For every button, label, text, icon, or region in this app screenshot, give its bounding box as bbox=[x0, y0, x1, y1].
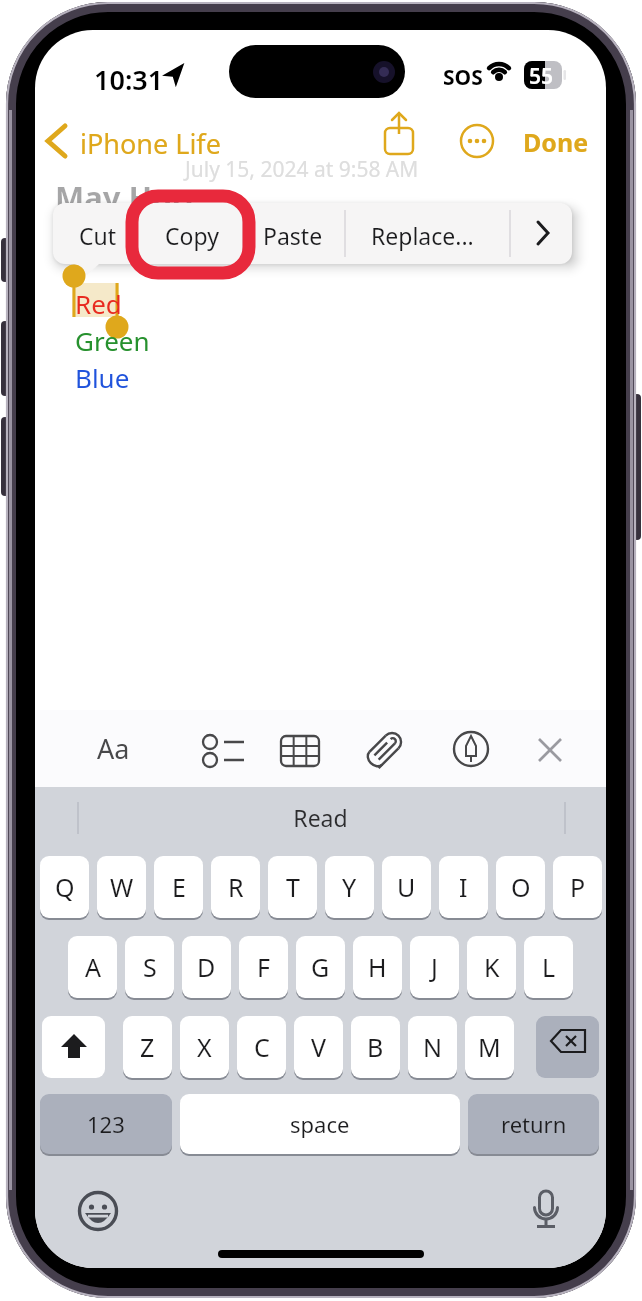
staticText: I bbox=[459, 870, 468, 904]
button[interactable]: R bbox=[211, 856, 260, 918]
button[interactable]: Z bbox=[123, 1016, 172, 1078]
button[interactable]: B bbox=[351, 1016, 400, 1078]
staticText: Red bbox=[75, 286, 122, 321]
button[interactable]: T bbox=[268, 856, 317, 918]
button[interactable]: S bbox=[125, 936, 174, 998]
button[interactable] bbox=[523, 1185, 569, 1233]
staticText: space bbox=[290, 1109, 350, 1139]
button[interactable]: return bbox=[468, 1094, 599, 1154]
staticText: 55 bbox=[529, 62, 554, 91]
button[interactable] bbox=[357, 726, 413, 772]
button[interactable]: L bbox=[524, 936, 573, 998]
staticText: A bbox=[85, 950, 101, 984]
staticText: Y bbox=[342, 870, 357, 904]
staticText: Aa bbox=[97, 730, 130, 767]
button[interactable] bbox=[43, 122, 213, 162]
button[interactable]: X bbox=[180, 1016, 229, 1078]
staticText: H bbox=[368, 950, 387, 984]
staticText: Blue bbox=[75, 360, 130, 395]
button[interactable]: Paste bbox=[257, 218, 327, 250]
staticText: Read bbox=[293, 802, 348, 833]
staticText: Done bbox=[523, 125, 589, 155]
staticText: S bbox=[143, 950, 157, 984]
button[interactable]: Read bbox=[235, 800, 405, 834]
button[interactable]: Y bbox=[325, 856, 374, 918]
staticText: K bbox=[484, 950, 500, 984]
staticText: J bbox=[431, 950, 438, 984]
button[interactable] bbox=[527, 726, 573, 772]
button[interactable]: I bbox=[439, 856, 488, 918]
button[interactable] bbox=[181, 726, 239, 772]
staticText: Cut bbox=[79, 220, 117, 251]
staticText: C bbox=[254, 1030, 270, 1064]
staticText: iPhone Life bbox=[80, 125, 221, 162]
button[interactable]: A bbox=[68, 936, 117, 998]
button[interactable] bbox=[527, 213, 561, 253]
staticText: Replace... bbox=[371, 220, 474, 251]
staticText: L bbox=[542, 950, 556, 984]
button[interactable]: M bbox=[465, 1016, 514, 1078]
staticText: G bbox=[311, 950, 330, 984]
button[interactable]: space bbox=[180, 1094, 460, 1154]
staticText: P bbox=[570, 870, 586, 904]
staticText: O bbox=[511, 870, 531, 904]
staticText: E bbox=[172, 870, 186, 904]
button[interactable]: Replace... bbox=[365, 218, 485, 250]
staticText: Green bbox=[75, 323, 150, 358]
staticText: July 15, 2024 at 9:58 AM bbox=[185, 155, 419, 184]
button[interactable]: F bbox=[239, 936, 288, 998]
button[interactable]: W bbox=[97, 856, 146, 918]
button[interactable]: O bbox=[496, 856, 545, 918]
button[interactable]: Cut bbox=[65, 218, 135, 250]
staticText: Z bbox=[140, 1030, 155, 1064]
button[interactable]: D bbox=[182, 936, 231, 998]
button[interactable]: N bbox=[408, 1016, 457, 1078]
staticText: B bbox=[367, 1030, 384, 1064]
button[interactable]: Done bbox=[523, 125, 593, 155]
staticText: W bbox=[110, 870, 134, 904]
button[interactable] bbox=[443, 726, 499, 772]
staticText: X bbox=[197, 1030, 212, 1064]
button[interactable] bbox=[536, 1016, 599, 1078]
staticText: Paste bbox=[263, 220, 323, 251]
staticText: T bbox=[286, 870, 300, 904]
button[interactable]: K bbox=[467, 936, 516, 998]
staticText: U bbox=[397, 870, 416, 904]
button[interactable] bbox=[42, 1016, 105, 1078]
button[interactable]: U bbox=[382, 856, 431, 918]
staticText: SOS bbox=[443, 63, 483, 92]
staticText: R bbox=[228, 870, 244, 904]
button[interactable]: G bbox=[296, 936, 345, 998]
button[interactable]: Copy bbox=[155, 218, 225, 250]
staticText: 10:31 bbox=[94, 61, 164, 98]
staticText: 123 bbox=[87, 1109, 125, 1139]
button[interactable]: Q bbox=[40, 856, 89, 918]
button[interactable]: P bbox=[553, 856, 602, 918]
staticText: Q bbox=[55, 870, 75, 904]
staticText: M bbox=[478, 1030, 501, 1064]
button[interactable] bbox=[457, 121, 497, 161]
button[interactable] bbox=[380, 120, 418, 160]
staticText: May Hore bbox=[55, 176, 204, 218]
staticText: F bbox=[257, 950, 270, 984]
button[interactable]: H bbox=[353, 936, 402, 998]
staticText: V bbox=[311, 1030, 327, 1064]
button[interactable]: J bbox=[410, 936, 459, 998]
button[interactable]: 123 bbox=[40, 1094, 172, 1154]
button[interactable]: C bbox=[237, 1016, 286, 1078]
button[interactable]: V bbox=[294, 1016, 343, 1078]
staticText: N bbox=[423, 1030, 443, 1064]
button[interactable] bbox=[271, 726, 329, 772]
button[interactable]: E bbox=[154, 856, 203, 918]
staticText: return bbox=[501, 1109, 567, 1139]
staticText: D bbox=[197, 950, 216, 984]
button[interactable]: Aa bbox=[97, 730, 147, 770]
button[interactable] bbox=[75, 1188, 121, 1234]
staticText: Copy bbox=[165, 220, 219, 251]
